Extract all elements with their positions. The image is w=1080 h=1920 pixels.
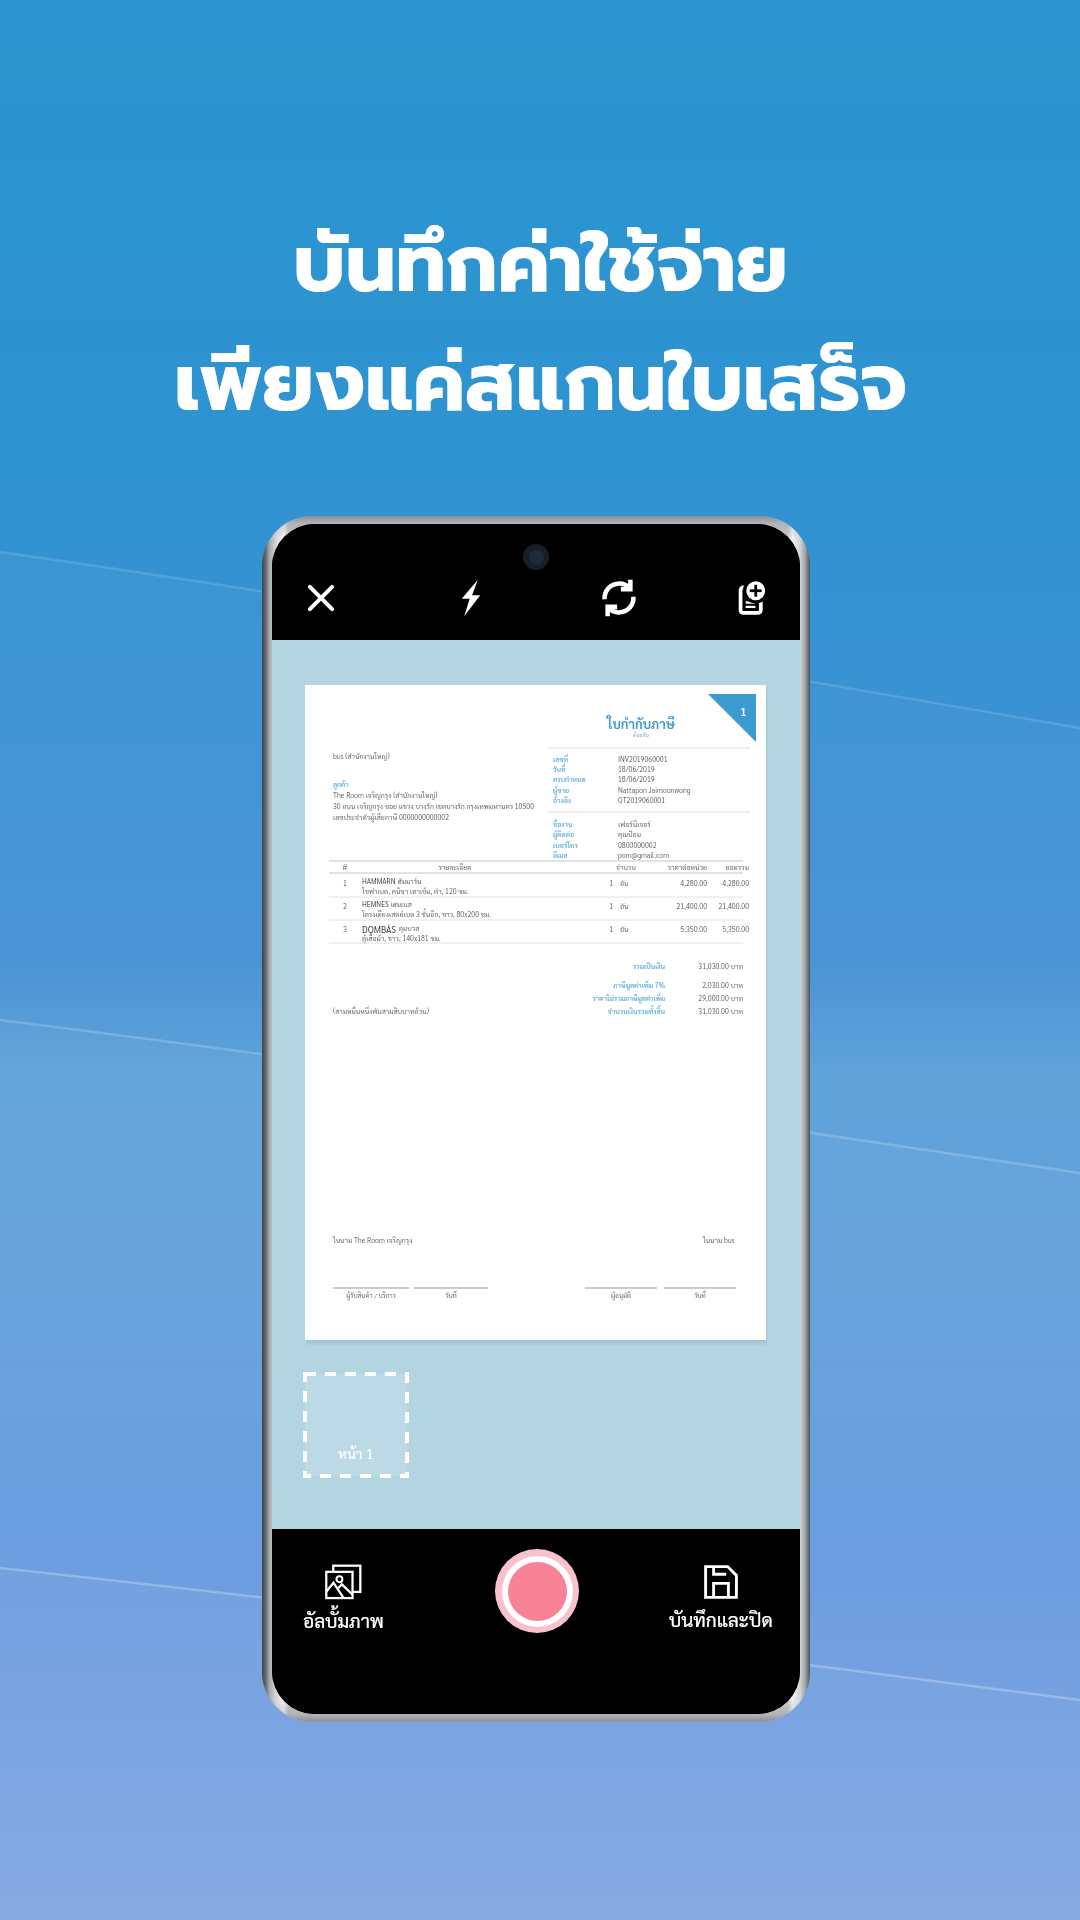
staticText: 2,030.00 บาท xyxy=(681,981,743,990)
staticText: วันที่ xyxy=(664,1291,736,1299)
staticText: อ้างอิง xyxy=(553,796,571,805)
staticText: 21,400.00 xyxy=(699,902,749,911)
staticText: pom@gmail.com xyxy=(618,851,670,860)
staticText: 29,000.00 บาท xyxy=(681,994,743,1003)
staticText: 1 xyxy=(593,902,613,911)
staticText: ผู้รับสินค้า / บริการ xyxy=(333,1291,409,1299)
staticText: Nattapon Jaimoonwong xyxy=(618,786,691,795)
staticText: อีเมล xyxy=(553,851,568,860)
staticText: โซฟาเบด, คนิซา เทาเข้ม, ดำ, 120 ซม. xyxy=(362,887,469,896)
staticText: ผู้ติดต่อ xyxy=(553,830,575,839)
button[interactable]: บันทึกและปิด xyxy=(621,1562,800,1632)
staticText: 0800000002 xyxy=(618,841,657,850)
staticText: ต้นฉบับ xyxy=(571,732,711,738)
staticText: บันทึกและปิด xyxy=(669,1607,773,1632)
staticText: ราคาไม่รวมภาษีมูลค่าเพิ่ม xyxy=(545,994,665,1003)
staticText: อัลบั้มภาพ xyxy=(303,1608,384,1633)
staticText: วันที่ xyxy=(553,765,566,774)
staticText: # xyxy=(338,863,352,872)
staticText: เบอร์โทร xyxy=(553,841,578,850)
staticText: หน้า 1 xyxy=(338,1444,374,1462)
staticText: ผู้ขาย xyxy=(553,786,569,795)
staticText: ผู้อนุมัติ xyxy=(585,1291,657,1299)
staticText: 5,350.00 xyxy=(637,925,707,934)
staticText: 1 xyxy=(593,879,613,888)
staticText: 3 xyxy=(338,925,352,934)
staticText: 1 xyxy=(593,925,613,934)
staticText: จำนวน xyxy=(605,863,647,872)
staticText: รายละเอียด xyxy=(415,863,495,872)
staticText: 2 xyxy=(338,902,352,911)
staticText: เพียงแค่สแกนใบเสร็จ xyxy=(174,324,907,443)
staticText: ดุมบวส xyxy=(397,924,420,933)
staticText: ยอดรวม xyxy=(699,863,749,872)
staticText: 1 xyxy=(338,879,352,888)
staticText: จำนวนเงินรวมทั้งสิ้น xyxy=(565,1007,665,1016)
staticText: อัน xyxy=(620,925,629,934)
staticText: ภาษีมูลค่าเพิ่ม 7% xyxy=(565,981,665,990)
staticText: โครงเตียงเสตย์เบด 3 ชั้นอีก, ขาว, 80x200… xyxy=(362,910,492,919)
staticText: bus (สำนักงานใหญ่) xyxy=(333,752,390,761)
staticText: ลูกค้า xyxy=(333,780,349,789)
staticText: 5,350.00 xyxy=(699,925,749,934)
button[interactable]: Add document xyxy=(721,567,783,629)
staticText: HAMMARN xyxy=(362,877,396,886)
staticText: ในนาม The Room เจริญกรุง xyxy=(333,1236,413,1245)
staticText: HEMNES xyxy=(362,900,389,909)
button[interactable]: Page 1 thumbnail xyxy=(305,1374,407,1476)
staticText: ในนาม bus xyxy=(703,1236,735,1245)
button[interactable]: Capture xyxy=(495,1549,579,1633)
staticText: เฮมเนส xyxy=(389,900,412,909)
staticText: อัน xyxy=(620,902,629,911)
staticText: วันที่ xyxy=(414,1291,488,1299)
staticText: 18/06/2019 xyxy=(618,765,655,774)
button[interactable]: อัลบั้มภาพ xyxy=(272,1562,443,1633)
staticText: ตู้เสื้อผ้า, ขาว, 140x181 ซม. xyxy=(362,934,441,943)
staticText: ชื่องาน xyxy=(553,820,573,829)
staticText: รวมเป็นเงิน xyxy=(565,962,665,971)
button[interactable]: Close xyxy=(290,567,352,629)
staticText: อัน xyxy=(620,879,629,888)
staticText: ครบกำหนด xyxy=(553,775,586,784)
staticText: INV2019060001 xyxy=(618,755,668,764)
staticText: 31,030.00 บาท xyxy=(681,962,743,971)
staticText: เลขที่ xyxy=(553,755,568,764)
staticText: 1 xyxy=(740,703,747,719)
staticText: 31,030.00 บาท xyxy=(681,1007,743,1016)
staticText: (สามหมื่นหนึ่งพันสามสิบบาทถ้วน) xyxy=(333,1007,429,1016)
staticText: The Room เจริญกรุง (สำนักงานใหญ่) xyxy=(333,791,438,800)
staticText: 21,400.00 xyxy=(637,902,707,911)
staticText: 30 ถนน เจริญกรุง ซอย แขวง บางรัก เขตบางร… xyxy=(333,802,535,811)
staticText: เลขประจำตัวผู้เสียภาษี 0000000000002 xyxy=(333,813,450,822)
staticText: บันทึกค่าใช้จ่าย xyxy=(293,205,788,324)
staticText: 4,280.00 xyxy=(637,879,707,888)
staticText: DOMBÅS xyxy=(362,923,397,935)
button[interactable]: Rotate xyxy=(588,567,650,629)
staticText: QT2019060001 xyxy=(618,796,666,805)
button[interactable]: Flash xyxy=(440,567,502,629)
staticText: 4,280.00 xyxy=(699,879,749,888)
staticText: เฟอร์นิเจอร์ xyxy=(618,820,651,829)
staticText: ใบกำกับภาษี xyxy=(571,715,711,732)
staticText: 18/06/2019 xyxy=(618,775,655,784)
staticText: คุณป้อม xyxy=(618,830,642,839)
staticText: ฮัมมาร์น xyxy=(396,877,422,886)
staticText: ราคาต่อหน่วย xyxy=(637,863,707,872)
